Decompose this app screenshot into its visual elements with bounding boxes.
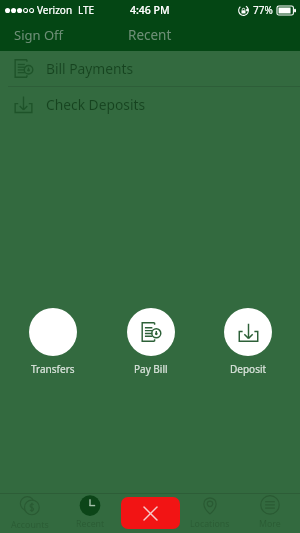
button[interactable]: Check Deposits: [0, 87, 300, 122]
staticText: Deposit: [230, 362, 267, 376]
button[interactable]: More: [240, 493, 300, 533]
button[interactable]: Recent: [60, 493, 120, 533]
staticText: Locations: [190, 518, 230, 530]
staticText: Verizon: [37, 3, 73, 17]
staticText: Accounts: [11, 519, 49, 531]
staticText: Pay Bill: [134, 362, 168, 376]
staticText: Transfers: [31, 362, 75, 376]
button[interactable]: Accounts: [0, 493, 60, 533]
staticText: 4:46 PM: [130, 3, 170, 17]
button[interactable]: Transfers: [29, 308, 77, 376]
button[interactable]: Close: [121, 497, 180, 529]
staticText: More: [259, 518, 281, 530]
staticText: Bill Payments: [46, 59, 134, 78]
staticText: Check Deposits: [46, 95, 146, 114]
staticText: 77%: [253, 3, 273, 17]
button[interactable]: Sign Off: [0, 21, 75, 51]
button[interactable]: Deposit: [224, 308, 272, 376]
button[interactable]: Pay Bill: [127, 308, 175, 376]
staticText: Recent: [128, 26, 172, 44]
button[interactable]: Bill Payments: [0, 51, 300, 86]
staticText: Sign Off: [14, 26, 63, 44]
staticText: LTE: [78, 3, 95, 17]
button[interactable]: Locations: [180, 493, 240, 533]
staticText: Recent: [76, 518, 105, 530]
